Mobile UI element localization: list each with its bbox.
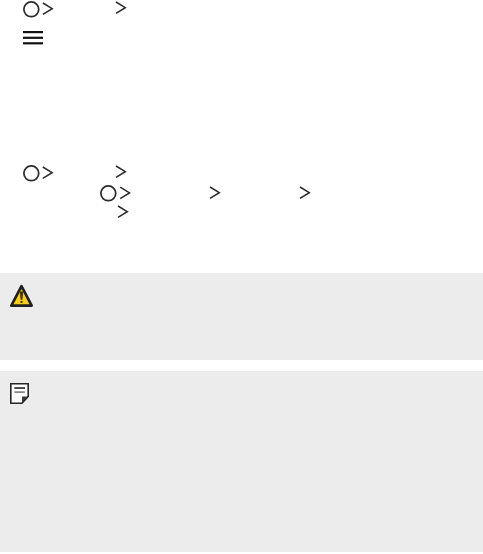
button[interactable]: Home [23,1,52,18]
button[interactable]: Expand item [210,187,219,198]
button[interactable]: Next [116,2,125,13]
button[interactable]: Menu [23,31,43,44]
button[interactable] [0,273,483,360]
button[interactable] [0,371,483,552]
other: Warning [10,284,33,307]
button[interactable]: Expand item [300,187,309,198]
button[interactable]: Expand item [118,206,127,217]
button[interactable]: Subsection [100,185,130,202]
other: Note [10,383,29,404]
button[interactable]: Section [23,165,52,182]
button[interactable]: Expand [116,166,125,177]
